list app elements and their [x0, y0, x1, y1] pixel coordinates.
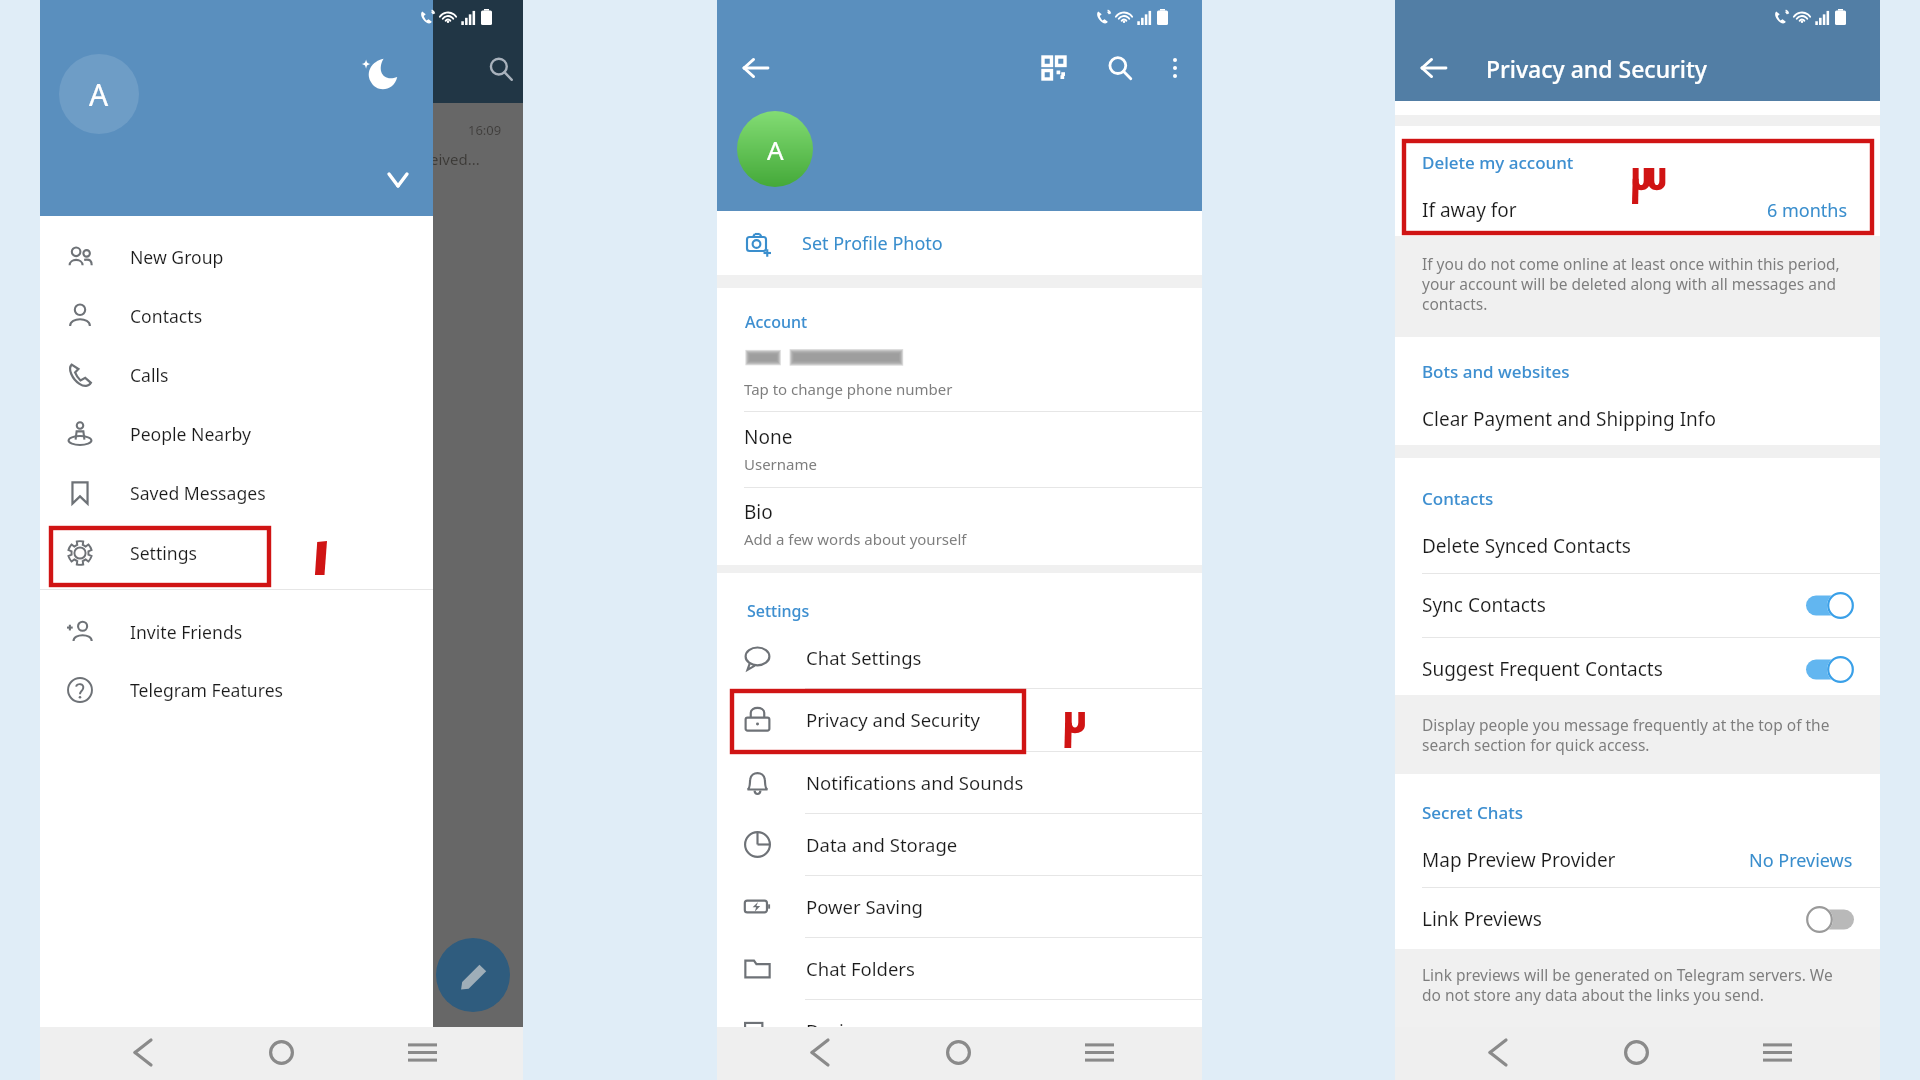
staticText: If away for — [1422, 197, 1517, 223]
staticText: Contacts — [1422, 487, 1494, 510]
button[interactable]: Profile photo — [737, 111, 813, 187]
staticText: Notifications and Sounds — [806, 770, 1024, 795]
staticText: Bots and websites — [1422, 360, 1570, 383]
button[interactable]: Invite Friends — [40, 602, 433, 661]
button[interactable]: Devices — [717, 999, 1202, 1061]
staticText: Link Previews — [1422, 906, 1542, 932]
button[interactable] — [1395, 521, 1880, 573]
staticText: Devices — [806, 1018, 872, 1043]
button[interactable]: Telegram Features — [40, 660, 433, 719]
staticText: Data and Storage — [806, 832, 958, 857]
button[interactable]: Calls — [40, 345, 433, 404]
staticText: Calls — [130, 363, 169, 387]
button[interactable]: Suggest Frequent Contacts — [1395, 637, 1880, 701]
button[interactable]: Home — [256, 1027, 306, 1077]
button[interactable]: Recents — [1752, 1027, 1802, 1077]
button[interactable]: Expand accounts — [376, 155, 420, 199]
button[interactable]: Back — [733, 45, 779, 91]
button[interactable]: Back — [795, 1027, 845, 1077]
staticText: Contacts — [130, 304, 203, 328]
staticText: New Group — [130, 245, 224, 269]
staticText: Display people you message frequently at… — [1422, 714, 1852, 755]
button[interactable]: Chat Settings — [717, 626, 1202, 688]
staticText: Map Preview Provider — [1422, 847, 1616, 873]
staticText: Bio — [744, 499, 773, 525]
button[interactable]: Set Profile Photo — [717, 211, 1202, 275]
button[interactable]: Contacts — [40, 286, 433, 345]
button[interactable]: Back — [1473, 1027, 1523, 1077]
button[interactable] — [1395, 395, 1880, 445]
staticText: Telegram Features — [130, 678, 283, 702]
button[interactable]: Saved Messages — [40, 463, 433, 522]
staticText: A — [767, 132, 784, 167]
button[interactable]: New message — [436, 938, 510, 1012]
button[interactable]: Night mode — [356, 51, 402, 97]
staticText: Username — [744, 454, 817, 474]
staticText: Clear Payment and Shipping Info — [1422, 406, 1716, 432]
staticText: Delete Synced Contacts — [1422, 533, 1631, 559]
button[interactable]: New Group — [40, 227, 433, 286]
button[interactable]: Recents — [1074, 1027, 1124, 1077]
button[interactable]: Power Saving — [717, 875, 1202, 937]
button[interactable]: People Nearby — [40, 404, 433, 463]
staticText: Sync Contacts — [1422, 592, 1546, 618]
staticText: People Nearby — [130, 422, 251, 446]
button[interactable]: Link Previews — [1395, 887, 1880, 951]
staticText: Chat Folders — [806, 956, 915, 981]
button[interactable]: Home — [1611, 1027, 1661, 1077]
button[interactable]: Home — [933, 1027, 983, 1077]
staticText: Settings — [747, 600, 810, 622]
staticText: None — [744, 424, 793, 450]
staticText: Suggest Frequent Contacts — [1422, 656, 1663, 682]
button[interactable]: Back — [118, 1027, 168, 1077]
staticText: Add a few words about yourself — [744, 529, 967, 549]
staticText: Privacy and Security — [1486, 53, 1707, 84]
button[interactable]: Map Preview Provider — [1395, 834, 1880, 886]
button[interactable]: Search — [480, 48, 522, 90]
button[interactable]: Privacy and Security — [717, 688, 1202, 750]
staticText: Saved Messages — [130, 481, 266, 505]
button[interactable]: Notifications and Sounds — [717, 751, 1202, 813]
staticText: Set Profile Photo — [802, 231, 943, 256]
staticText: Account — [745, 311, 808, 333]
staticText: A — [89, 74, 109, 115]
staticText: Invite Friends — [130, 620, 243, 644]
button[interactable] — [1395, 126, 1880, 236]
staticText: Chat Settings — [806, 645, 922, 670]
button[interactable]: QR code — [1031, 45, 1077, 91]
staticText: If you do not come online at least once … — [1422, 253, 1852, 314]
staticText: Tap to change phone number — [744, 379, 953, 399]
staticText: 16:09 — [468, 121, 502, 139]
button[interactable]: Sync Contacts — [1395, 573, 1880, 637]
button[interactable]: Profile photo — [59, 54, 139, 134]
staticText: Delete my account — [1422, 151, 1574, 174]
staticText: Secret Chats — [1422, 801, 1523, 824]
staticText: Privacy and Security — [806, 707, 980, 732]
button[interactable]: Recents — [397, 1027, 447, 1077]
button[interactable]: Back — [1411, 45, 1457, 91]
button[interactable]: Chat Folders — [717, 937, 1202, 999]
staticText: Link previews will be generated on Teleg… — [1422, 964, 1852, 1005]
button[interactable]: More options — [1152, 45, 1198, 91]
button[interactable]: Settings — [40, 523, 433, 582]
staticText: eived... — [430, 149, 480, 169]
button[interactable]: Search — [1097, 45, 1143, 91]
staticText: Power Saving — [806, 894, 923, 919]
staticText: No Previews — [1749, 848, 1853, 873]
staticText: 6 months — [1767, 198, 1848, 223]
staticText: Settings — [130, 541, 197, 565]
button[interactable]: Data and Storage — [717, 813, 1202, 875]
